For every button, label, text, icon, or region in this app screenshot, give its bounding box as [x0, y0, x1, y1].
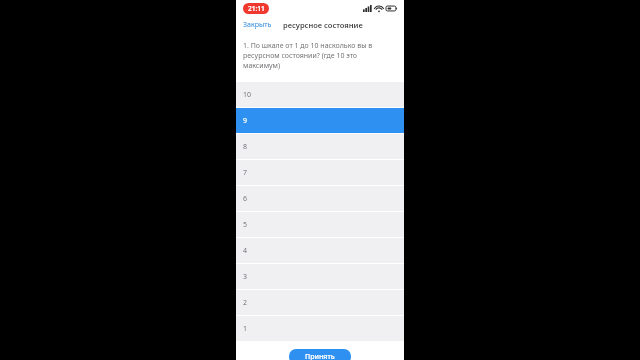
staticText: 7 — [243, 168, 248, 178]
button[interactable]: Принять — [289, 349, 351, 360]
button[interactable]: 6 — [236, 186, 404, 211]
staticText: 5 — [243, 220, 248, 230]
button[interactable]: 4 — [236, 238, 404, 263]
staticText: 10 — [243, 90, 252, 100]
button[interactable]: 10 — [236, 82, 404, 107]
staticText: 4 — [243, 246, 248, 256]
staticText: 8 — [243, 142, 248, 152]
button[interactable]: 2 — [236, 290, 404, 315]
staticText: Закрыть — [243, 20, 272, 30]
staticText: 6 — [243, 194, 248, 204]
staticText: 21:11 — [248, 4, 265, 13]
button[interactable]: 5 — [236, 212, 404, 237]
button[interactable]: 9 — [236, 108, 404, 133]
staticText: 3 — [243, 272, 248, 282]
staticText: Принять — [305, 352, 335, 360]
staticText: 1 — [243, 324, 248, 334]
staticText: 2 — [243, 298, 248, 308]
staticText: ресурсное состояние — [283, 20, 363, 30]
button[interactable]: 7 — [236, 160, 404, 185]
staticText: 1. По шкале от 1 до 10 насколько вы в ре… — [243, 41, 393, 71]
staticText: 9 — [243, 116, 248, 126]
button[interactable]: 8 — [236, 134, 404, 159]
button[interactable]: 3 — [236, 264, 404, 289]
button[interactable]: Закрыть — [241, 17, 274, 33]
